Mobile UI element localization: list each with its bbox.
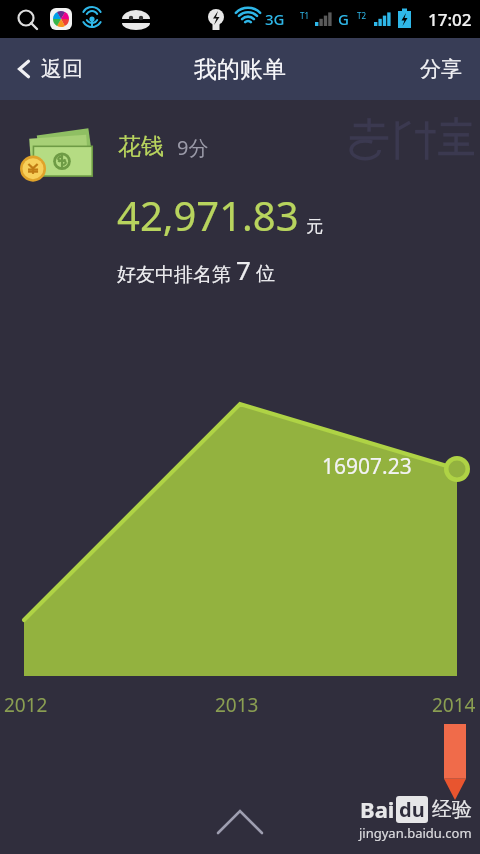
staticText: 返回 [41, 56, 83, 82]
staticText: T2 [357, 10, 367, 21]
staticText: T1 [300, 10, 310, 21]
staticText: 元 [306, 216, 323, 237]
staticText: 我的账单 [194, 55, 286, 84]
staticText: 2012 [4, 692, 48, 718]
staticText: 分享 [420, 56, 462, 82]
staticText: 16907.23 [322, 452, 412, 481]
staticText: 2014 [432, 692, 476, 718]
staticText: Bai [360, 794, 395, 824]
staticText: G [338, 9, 349, 29]
button[interactable]: 分享 [402, 46, 480, 92]
staticText: 42,971.83 [117, 188, 299, 242]
staticText: 9分 [177, 134, 209, 161]
staticText: 7 [236, 252, 251, 287]
staticText: 3G [265, 9, 285, 29]
staticText: 花钱 [118, 132, 164, 161]
staticText: 经验 [432, 797, 472, 822]
staticText: du [399, 796, 425, 823]
other: Spending [20, 124, 104, 186]
staticText: 位 [256, 262, 275, 286]
staticText: 好友中排名第 [117, 263, 231, 287]
staticText: jingyan.baidu.com [359, 824, 472, 842]
staticText: 17:02 [428, 8, 472, 31]
button[interactable]: 返回 [0, 48, 99, 90]
staticText: 2013 [215, 692, 259, 718]
